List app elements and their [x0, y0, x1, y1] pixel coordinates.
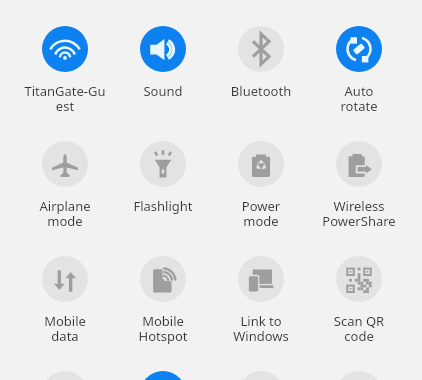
staticText: Wireless PowerShare [307, 197, 411, 229]
button[interactable]: Mobile data [13, 256, 117, 344]
staticText: Auto rotate [307, 82, 411, 114]
staticText: Mobile data [13, 312, 117, 344]
button[interactable]: TitanGate-Gu est [13, 26, 117, 114]
button[interactable] [13, 371, 117, 380]
staticText: Scan QR code [307, 312, 411, 344]
button[interactable]: Power mode [209, 141, 313, 229]
staticText: TitanGate-Gu est [13, 82, 117, 114]
button[interactable] [307, 371, 411, 380]
staticText: Power mode [209, 197, 313, 229]
staticText: Flashlight [111, 197, 215, 215]
button[interactable] [209, 371, 313, 380]
button[interactable]: Auto rotate [307, 26, 411, 114]
button[interactable]: Mobile Hotspot [111, 256, 215, 344]
button[interactable]: Scan QR code [307, 256, 411, 344]
button[interactable] [111, 371, 215, 380]
button[interactable]: Flashlight [111, 141, 215, 215]
staticText: Link to Windows [209, 312, 313, 344]
button[interactable]: Link to Windows [209, 256, 313, 344]
staticText: Mobile Hotspot [111, 312, 215, 344]
staticText: Sound [111, 82, 215, 100]
button[interactable]: Sound [111, 26, 215, 100]
button[interactable]: Bluetooth [209, 26, 313, 100]
button[interactable]: Wireless PowerShare [307, 141, 411, 229]
staticText: Airplane mode [13, 197, 117, 229]
staticText: Bluetooth [209, 82, 313, 100]
button[interactable]: Airplane mode [13, 141, 117, 229]
